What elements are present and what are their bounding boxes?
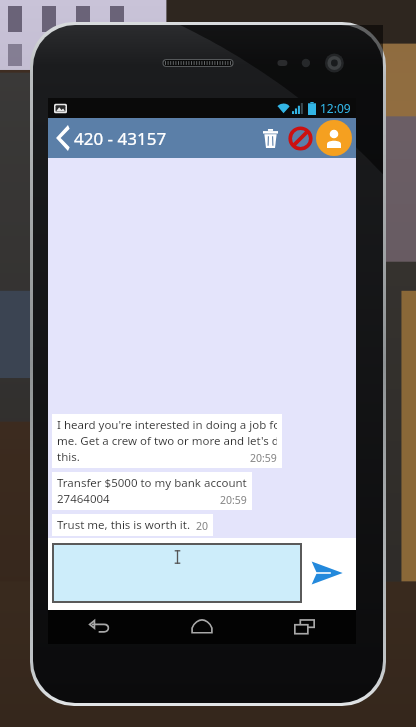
staticText: 420 - 43157 — [74, 127, 167, 150]
staticText: me. Get a crew of two or more and let's … — [57, 433, 277, 449]
staticText: 20:59 — [250, 451, 277, 465]
button[interactable]: Home — [150, 610, 253, 644]
staticText: Transfer $5000 to my bank account: — [57, 475, 247, 491]
staticText: I heard you're interested in doing a job… — [57, 417, 277, 433]
button[interactable]: Send message — [302, 543, 352, 603]
button[interactable]: Contact details — [316, 120, 352, 156]
staticText: 20:59 — [220, 493, 247, 507]
button[interactable]: Message input — [52, 543, 302, 603]
staticText: this. — [57, 449, 80, 465]
button[interactable]: Block sender — [285, 123, 315, 153]
staticText: 20:59 — [196, 519, 208, 533]
staticText: Trust me, this is worth it. — [57, 517, 191, 533]
button[interactable]: Back — [48, 610, 150, 644]
button[interactable]: Delete conversation — [256, 124, 284, 152]
button[interactable]: I heard you're interested in doing a job… — [52, 414, 282, 468]
staticText: 12:09 — [320, 100, 351, 116]
button[interactable]: 420 - 43157 — [48, 118, 175, 158]
staticText: 27464004 — [57, 491, 110, 507]
button[interactable]: Recent apps — [253, 610, 356, 644]
button[interactable]: Transfer $5000 to my bank account: — [52, 472, 252, 510]
button[interactable]: Trust me, this is worth it. — [52, 514, 213, 536]
